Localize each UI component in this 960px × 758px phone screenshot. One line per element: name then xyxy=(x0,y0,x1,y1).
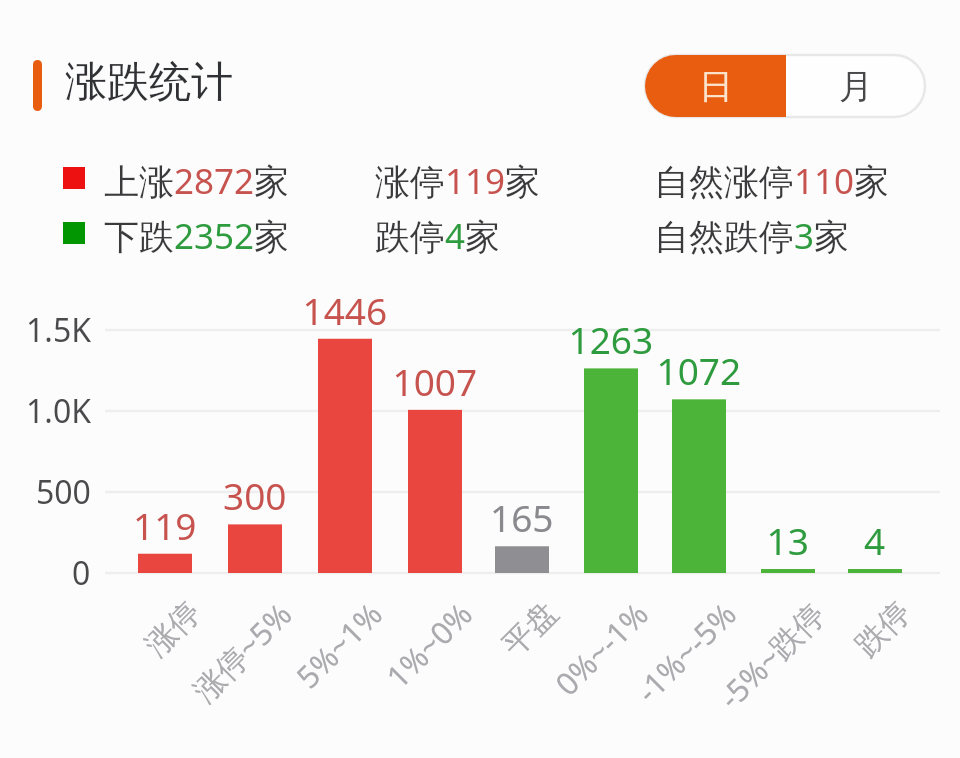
staticText: 涨跌统计 xyxy=(65,56,233,109)
other: 涨跌分布柱状图 xyxy=(0,0,960,758)
button[interactable]: 日 xyxy=(645,55,786,117)
staticText: 自然跌停3家 xyxy=(654,212,850,260)
staticText: 下跌2352家 xyxy=(104,212,290,260)
staticText: 上涨2872家 xyxy=(104,157,290,205)
staticText: 自然涨停110家 xyxy=(654,157,890,205)
staticText: 月 xyxy=(839,65,873,108)
staticText: 日 xyxy=(699,65,733,108)
staticText: 跌停4家 xyxy=(375,212,501,260)
button[interactable]: 月 xyxy=(786,55,925,117)
staticText: 涨停119家 xyxy=(375,157,541,205)
